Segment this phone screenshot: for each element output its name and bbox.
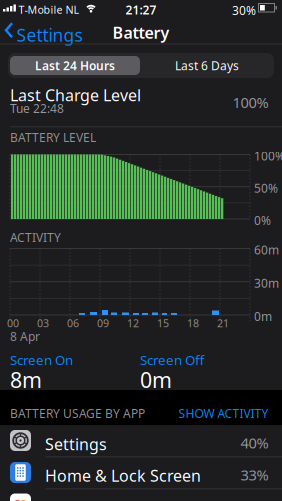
staticText: 06: [67, 316, 79, 330]
staticText: ACTIVITY: [10, 229, 61, 245]
staticText: 100%: [232, 92, 268, 112]
staticText: Settings: [16, 23, 82, 46]
staticText: 50%: [254, 180, 278, 196]
button[interactable]: Last 6 Days: [142, 56, 272, 75]
staticText: 09: [97, 316, 109, 330]
staticText: 0%: [254, 212, 271, 228]
staticText: 30%: [232, 2, 256, 18]
staticText: 0m: [140, 365, 172, 394]
staticText: 03: [37, 316, 49, 330]
staticText: 60m: [254, 242, 279, 258]
staticText: Last Charge Level: [10, 84, 141, 106]
button[interactable]: Settings: [0, 425, 282, 456]
staticText: Tue 22:48: [10, 100, 64, 116]
staticText: Home & Lock Screen: [45, 465, 201, 486]
staticText: 8m: [10, 365, 42, 394]
button[interactable]: Back to Settings: [0, 0, 282, 501]
staticText: 0m: [254, 308, 272, 324]
button[interactable]: Home & Lock Screen: [0, 457, 282, 488]
staticText: Screen Off: [140, 351, 204, 369]
staticText: Settings: [45, 433, 107, 455]
staticText: Screen On: [10, 351, 73, 369]
staticText: Battery: [112, 22, 169, 43]
staticText: Last 24 Hours: [35, 57, 115, 73]
staticText: 40%: [240, 433, 268, 452]
staticText: 00: [7, 316, 19, 330]
button[interactable]: Photos: [0, 489, 282, 501]
staticText: 8 Apr: [10, 328, 40, 344]
button[interactable]: SHOW ACTIVITY: [148, 405, 268, 421]
staticText: BATTERY USAGE BY APP: [10, 405, 145, 421]
staticText: 21:27: [125, 2, 156, 18]
button[interactable]: Last 24 Hours: [10, 56, 140, 75]
staticText: T-Mobile NL: [18, 2, 79, 17]
staticText: 18: [187, 316, 199, 330]
staticText: Last 6 Days: [175, 57, 239, 73]
staticText: 15: [157, 316, 169, 330]
staticText: 21: [217, 316, 229, 330]
staticText: 33%: [240, 465, 268, 484]
staticText: 30m: [254, 275, 279, 291]
staticText: 100%: [254, 148, 282, 164]
staticText: 12: [127, 316, 139, 330]
staticText: BATTERY LEVEL: [10, 129, 96, 145]
staticText: SHOW ACTIVITY: [178, 405, 268, 421]
